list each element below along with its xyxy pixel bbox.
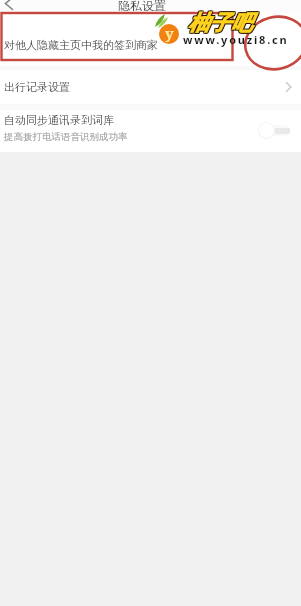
staticText: 柚子吧 bbox=[188, 10, 253, 36]
staticText: www.youzi8.cn bbox=[183, 32, 289, 47]
staticText: 柚子吧 bbox=[187, 9, 252, 35]
staticText: y bbox=[165, 24, 174, 43]
staticText: 柚子吧 bbox=[188, 11, 253, 37]
staticText: 柚子吧 bbox=[187, 11, 252, 37]
button[interactable]: 出行记录设置 bbox=[0, 70, 301, 104]
button[interactable]: Auto sync contacts to dictionary toggle bbox=[257, 121, 291, 140]
button[interactable]: Back bbox=[0, 0, 20, 13]
staticText: 隐私设置 bbox=[118, 0, 166, 11]
staticText: 出行记录设置 bbox=[4, 80, 70, 94]
staticText: 柚子吧 bbox=[189, 10, 254, 36]
staticText: 提高拨打电话语音识别成功率 bbox=[4, 131, 128, 143]
staticText: 柚子吧 bbox=[189, 11, 254, 37]
button[interactable]: 对他人隐藏主页中我的签到商家 bbox=[0, 13, 301, 66]
staticText: 柚子吧 bbox=[187, 10, 252, 36]
staticText: 对他人隐藏主页中我的签到商家 bbox=[4, 38, 158, 52]
staticText: 柚子吧 bbox=[189, 9, 254, 35]
staticText: 自动同步通讯录到词库 bbox=[4, 113, 114, 127]
staticText: 柚子吧 bbox=[188, 9, 253, 35]
button[interactable]: 自动同步通讯录到词库 bbox=[0, 110, 301, 152]
